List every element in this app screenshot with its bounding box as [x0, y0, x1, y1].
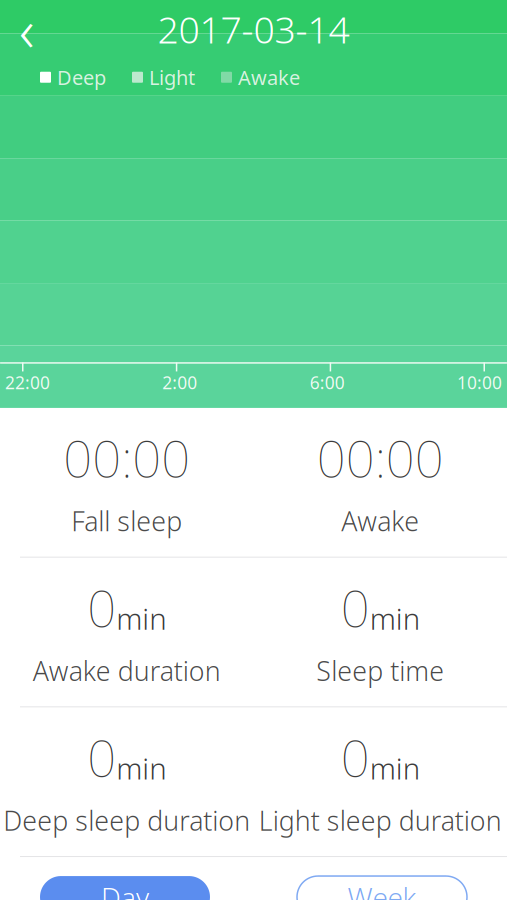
staticText: 6:00 [310, 371, 345, 394]
staticText: 0 [87, 574, 116, 641]
staticText: min [116, 599, 166, 638]
staticText: min [370, 749, 420, 788]
staticText: Deep [57, 64, 106, 91]
staticText: Week [347, 878, 416, 900]
staticText: ‹ [19, 0, 35, 68]
staticText: Awake [341, 503, 419, 539]
staticText: 0 [87, 723, 116, 791]
staticText: min [116, 749, 166, 788]
staticText: Day [101, 878, 149, 900]
staticText: 2:00 [162, 371, 197, 394]
staticText: min [370, 599, 420, 638]
staticText: 10:00 [457, 371, 502, 394]
staticText: Light [149, 64, 195, 91]
staticText: 0 [341, 723, 370, 791]
staticText: 00:00 [63, 424, 190, 491]
staticText: Awake duration [33, 653, 221, 688]
staticText: 2017-03-14 [157, 4, 349, 54]
staticText: 00:00 [317, 424, 444, 491]
staticText: Sleep time [316, 653, 444, 688]
staticText: Deep sleep duration [3, 803, 250, 838]
staticText: Light sleep duration [259, 803, 502, 838]
button[interactable]: Back [0, 6, 54, 52]
button[interactable]: Day [40, 876, 210, 900]
button[interactable]: Week [297, 876, 467, 900]
staticText: Fall sleep [71, 503, 182, 539]
staticText: 22:00 [5, 371, 50, 394]
staticText: Awake [238, 64, 300, 91]
staticText: 0 [341, 574, 370, 641]
